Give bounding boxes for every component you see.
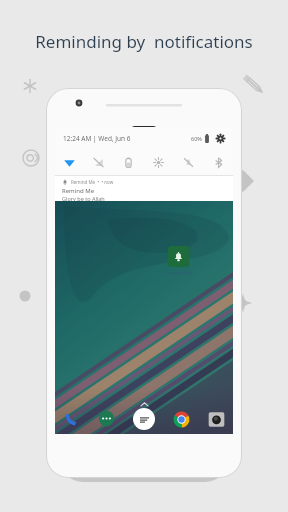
button[interactable]: Remind Me xyxy=(165,246,192,277)
button[interactable]: Flashlight xyxy=(143,149,173,175)
button[interactable]: Wi-Fi xyxy=(55,149,84,175)
button[interactable]: Remind Me • • now xyxy=(55,176,233,201)
button[interactable]: Chrome xyxy=(173,411,190,428)
button[interactable]: Do not disturb xyxy=(173,149,203,175)
staticText: 60% xyxy=(191,135,202,142)
button[interactable]: Phone xyxy=(63,411,80,428)
staticText: Remind Me xyxy=(165,270,192,277)
button[interactable]: Battery saver xyxy=(113,149,143,175)
button[interactable]: Settings xyxy=(216,134,225,143)
button[interactable]: Camera xyxy=(208,411,225,428)
button[interactable]: Messages xyxy=(98,411,115,428)
staticText: Glory be to Allah xyxy=(62,195,105,201)
staticText: Reminding by notifications xyxy=(0,30,288,53)
button[interactable]: Bluetooth xyxy=(203,149,233,175)
button[interactable]: Mobile data xyxy=(84,149,113,175)
staticText: Remind Me xyxy=(62,187,95,195)
button[interactable]: All apps xyxy=(133,408,155,430)
staticText: 12:24 AM | Wed, Jun 6 xyxy=(63,134,131,143)
staticText: Remind Me • • now xyxy=(71,179,114,185)
